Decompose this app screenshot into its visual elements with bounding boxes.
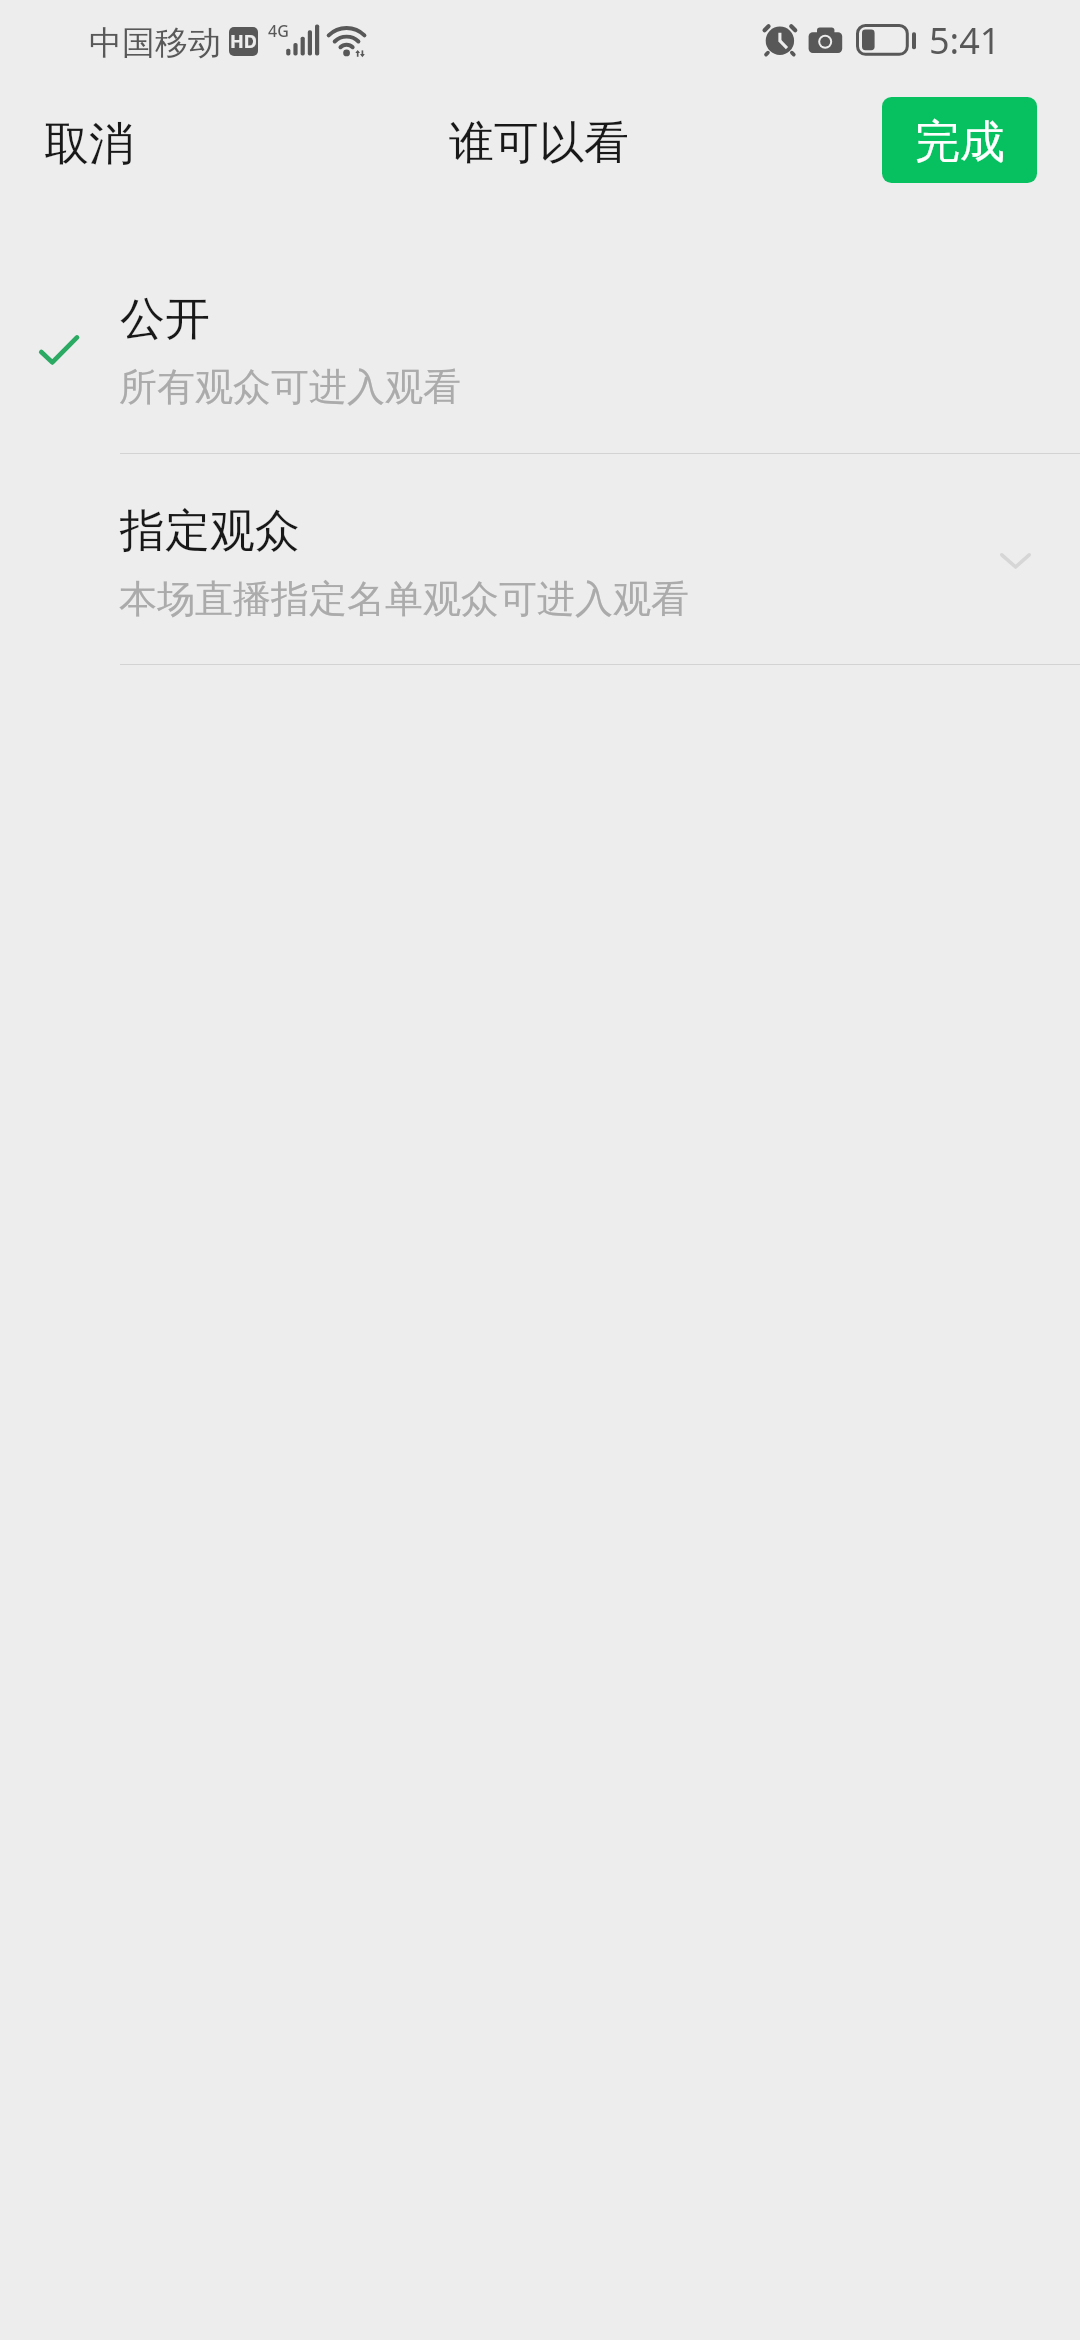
button[interactable]: 展开指定观众 [980, 532, 1052, 604]
button[interactable]: 已选中 [0, 240, 1080, 452]
staticText: 公开 [120, 291, 210, 348]
staticText: 所有观众可进入观看 [119, 363, 461, 411]
staticText: 本场直播指定名单观众可进入观看 [119, 575, 689, 623]
other: 已选中 [0, 240, 1080, 452]
staticText: 指定观众 [120, 503, 300, 560]
staticText: 中国移动 [89, 22, 221, 64]
staticText: HD [230, 29, 257, 54]
button[interactable]: 指定观众 [0, 452, 1080, 664]
staticText: 完成 [915, 114, 1005, 171]
staticText: 取消 [44, 116, 134, 173]
button[interactable]: 完成 [882, 97, 1037, 183]
button[interactable]: 取消 [20, 92, 157, 196]
staticText: 4G [268, 20, 289, 42]
staticText: 5:41 [929, 16, 1001, 65]
staticText: 谁可以看 [449, 115, 629, 172]
